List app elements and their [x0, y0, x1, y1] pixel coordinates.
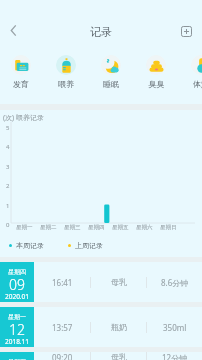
- button[interactable]: 星期一: [0, 307, 202, 347]
- staticText: 母乳: [111, 352, 127, 360]
- staticText: 0: [6, 221, 10, 229]
- button[interactable]: 臭臭: [134, 46, 177, 104]
- button[interactable]: 星期四: [0, 262, 202, 302]
- button[interactable]: 睡眠: [89, 46, 132, 104]
- staticText: 350ml: [163, 322, 187, 333]
- staticText: 星期五: [112, 224, 129, 231]
- staticText: 睡眠: [103, 79, 119, 89]
- staticText: 星期二: [40, 224, 57, 231]
- staticText: 星期一: [8, 313, 26, 321]
- staticText: 瓶奶: [111, 322, 127, 332]
- staticText: 母乳: [111, 277, 127, 287]
- staticText: 喂养: [58, 79, 74, 89]
- staticText: 星期日: [160, 224, 177, 231]
- staticText: 4: [6, 143, 10, 151]
- staticText: 星期六: [136, 224, 153, 231]
- staticText: 09:20: [52, 352, 73, 360]
- staticText: 发育: [13, 79, 29, 89]
- staticText: 8.6分钟: [161, 277, 189, 288]
- staticText: (次) 喂养记录: [3, 113, 45, 123]
- staticText: 记录: [90, 25, 112, 39]
- button[interactable]: Back: [2, 19, 25, 42]
- staticText: 09: [9, 275, 25, 294]
- staticText: 12: [9, 320, 25, 339]
- staticText: 3: [6, 163, 10, 171]
- staticText: 2020.01: [5, 292, 30, 301]
- staticText: 臭臭: [148, 79, 164, 89]
- staticText: 2: [6, 182, 10, 190]
- staticText: 体温: [193, 79, 202, 89]
- staticText: 星期一: [16, 224, 33, 231]
- staticText: 5: [6, 124, 10, 132]
- button[interactable]: Add record: [175, 20, 197, 42]
- staticText: 本周记录: [16, 241, 44, 250]
- staticText: 星期四: [88, 224, 105, 231]
- button[interactable]: 体温: [179, 46, 202, 104]
- staticText: 13:57: [52, 322, 73, 333]
- staticText: 星期四: [8, 268, 26, 276]
- staticText: 12分钟: [162, 352, 188, 360]
- button[interactable]: 喂养: [44, 46, 87, 104]
- staticText: 星期五: [8, 358, 26, 360]
- staticText: 2018.11: [5, 337, 30, 346]
- staticText: 上周记录: [75, 241, 103, 250]
- staticText: 1: [6, 202, 10, 210]
- staticText: 星期三: [64, 224, 81, 231]
- button[interactable]: 发育: [0, 46, 42, 104]
- staticText: 16:41: [52, 277, 73, 288]
- button[interactable]: 星期五: [0, 352, 202, 360]
